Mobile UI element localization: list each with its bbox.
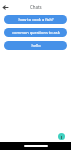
button[interactable]: Back — [0, 2, 10, 12]
button[interactable]: New chat — [58, 133, 65, 140]
button[interactable]: hello — [4, 41, 67, 50]
staticText: common questions to ask — [12, 30, 60, 35]
staticText: Chats — [30, 4, 42, 10]
staticText: hello — [31, 43, 41, 48]
staticText: how to cook a fish? — [18, 17, 54, 22]
button[interactable]: common questions to ask — [4, 28, 67, 37]
button[interactable]: how to cook a fish? — [4, 15, 67, 24]
